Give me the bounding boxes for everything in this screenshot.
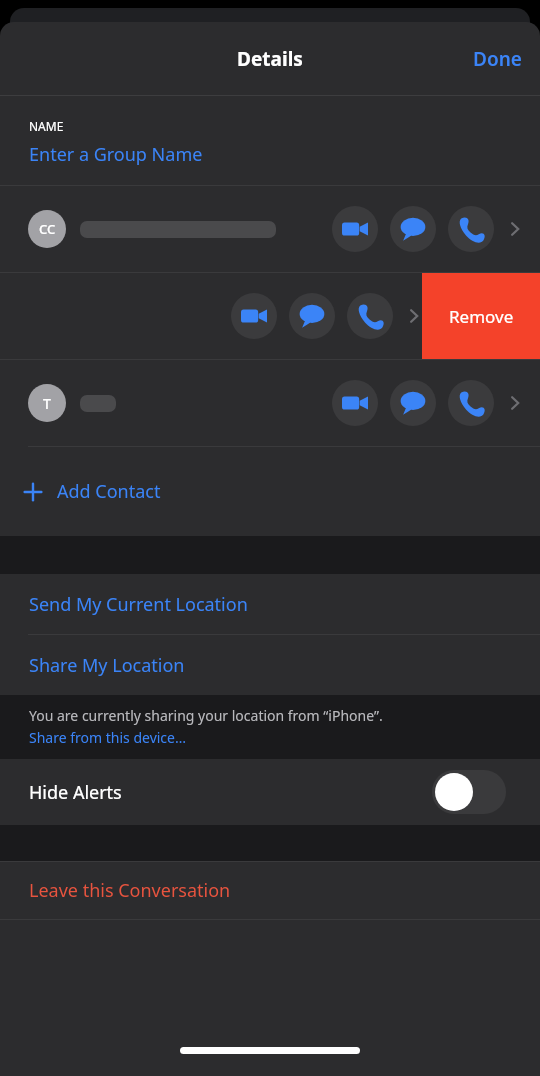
- button[interactable]: T: [0, 360, 540, 446]
- button[interactable]: CC: [0, 186, 540, 272]
- button[interactable]: Share My Location: [0, 635, 540, 695]
- staticText: T: [43, 394, 51, 413]
- button[interactable]: NAME: [0, 96, 540, 185]
- button[interactable]: FaceTime: [332, 206, 378, 252]
- other: Open contact: [504, 218, 526, 240]
- staticText: Done: [473, 46, 522, 72]
- staticText: Leave this Conversation: [29, 878, 231, 903]
- staticText: CC: [39, 220, 56, 238]
- staticText: Enter a Group Name: [29, 142, 203, 167]
- button[interactable]: Share from this device…: [29, 728, 187, 747]
- button[interactable]: Call: [448, 380, 494, 426]
- button[interactable]: FaceTime: [0, 273, 439, 359]
- staticText: Share from this device…: [29, 728, 187, 747]
- button[interactable]: Message: [390, 206, 436, 252]
- button[interactable]: Send My Current Location: [0, 574, 540, 634]
- staticText: Add Contact: [57, 479, 161, 504]
- staticText: Details: [237, 46, 303, 72]
- staticText: Hide Alerts: [29, 780, 122, 805]
- button[interactable]: Done: [455, 36, 540, 82]
- other: Open contact: [504, 392, 526, 414]
- button[interactable]: Message: [289, 293, 335, 339]
- button[interactable]: Add Contact: [0, 447, 540, 536]
- button[interactable]: Hide Alerts toggle: [432, 770, 506, 814]
- button[interactable]: FaceTime: [332, 380, 378, 426]
- button[interactable]: Leave this Conversation: [0, 862, 540, 919]
- button[interactable]: Call: [448, 206, 494, 252]
- button[interactable]: Hide Alerts: [0, 759, 540, 825]
- staticText: NAME: [29, 118, 64, 134]
- button[interactable]: Remove: [422, 273, 540, 359]
- button[interactable]: FaceTime: [231, 293, 277, 339]
- button[interactable]: Message: [390, 380, 436, 426]
- other: Open contact: [403, 305, 425, 327]
- staticText: Remove: [449, 305, 514, 328]
- staticText: You are currently sharing your location …: [29, 706, 383, 725]
- staticText: Share My Location: [29, 653, 185, 678]
- staticText: Send My Current Location: [29, 592, 248, 617]
- button[interactable]: Call: [347, 293, 393, 339]
